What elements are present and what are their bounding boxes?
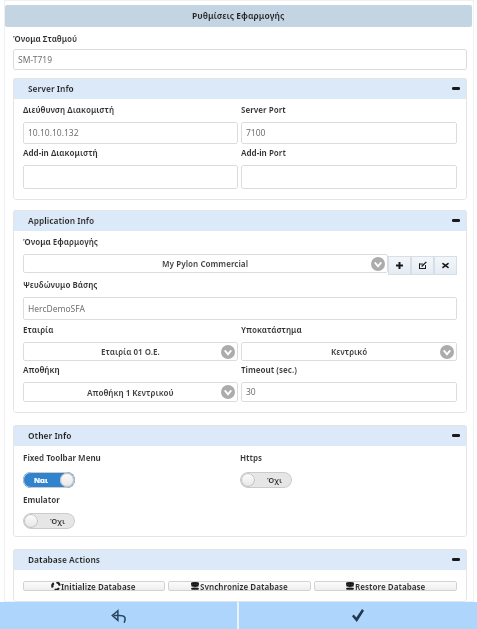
staticText: Https	[240, 452, 263, 463]
button[interactable]: 7100	[241, 122, 457, 144]
staticText: 10.10.10.132	[28, 127, 79, 139]
staticText: Timeout (sec.)	[241, 364, 297, 375]
staticText: Ψευδώνυμο Βάσης	[23, 279, 98, 290]
button[interactable]: Database Actions	[13, 549, 467, 570]
staticText: Fixed Toolbar Menu	[23, 452, 101, 463]
staticText: My Pylon Commercial	[162, 258, 249, 269]
button[interactable]: Όχι	[240, 472, 292, 488]
button[interactable]: Ναι	[23, 472, 75, 488]
button[interactable]: Other Info	[13, 425, 467, 446]
staticText: Server Info	[28, 83, 74, 94]
staticText: Όνομα Εφαρμογής	[23, 236, 98, 247]
staticText: 7100	[246, 127, 266, 139]
button[interactable]: Edit	[411, 256, 434, 275]
staticText: Ναι	[34, 475, 48, 485]
staticText: HercDemoSFA	[28, 303, 85, 315]
button[interactable]: Κεντρικό	[241, 342, 457, 361]
staticText: Αποθήκη	[23, 364, 60, 375]
staticText: Εταιρία 01 Ο.Ε.	[101, 346, 160, 357]
staticText: SM-T719	[18, 54, 53, 66]
staticText: Όνομα Σταθμού	[13, 33, 78, 44]
button[interactable]: Delete	[434, 256, 457, 275]
button[interactable]: Confirm	[239, 602, 477, 629]
button[interactable]: Undo	[0, 602, 237, 629]
button[interactable]: 30	[241, 382, 457, 402]
button[interactable]: 10.10.10.132	[23, 122, 238, 144]
staticText: Add-in Διακομιστή	[23, 147, 98, 158]
staticText: Server Port	[241, 104, 286, 115]
staticText: Application Info	[28, 215, 95, 226]
button[interactable]: Initialize Database	[23, 581, 165, 591]
staticText: Emulator	[23, 494, 60, 505]
staticText: Restore Database	[355, 581, 426, 591]
button[interactable]: Αποθήκη 1 Κεντρικού	[23, 382, 238, 402]
button[interactable]: Εταιρία 01 Ο.Ε.	[23, 342, 238, 361]
staticText: Υποκατάστημα	[241, 324, 302, 335]
staticText: Εταιρία	[23, 324, 54, 335]
button[interactable]: Server Info	[13, 78, 467, 99]
button[interactable]: My Pylon Commercial	[23, 254, 388, 273]
button[interactable]: SM-T719	[13, 49, 467, 70]
button[interactable]: Application Info	[13, 210, 467, 231]
staticText: Database Actions	[28, 554, 100, 565]
staticText: 30	[246, 386, 256, 398]
button[interactable]: Synchronize Database	[168, 581, 311, 591]
staticText: Διεύθυνση Διακομιστή	[23, 104, 115, 115]
button[interactable]	[241, 165, 457, 189]
staticText: Initialize Database	[61, 581, 136, 591]
button[interactable]: Όχι	[23, 513, 75, 529]
staticText: Ρυθμίσεις Εφαρμογής	[192, 10, 285, 22]
staticText: Add-in Port	[241, 147, 286, 158]
staticText: Όχι	[50, 516, 65, 526]
button[interactable]	[23, 165, 238, 189]
staticText: Synchronize Database	[200, 581, 288, 591]
staticText: Όχι	[267, 475, 282, 485]
button[interactable]: Add	[388, 256, 411, 275]
staticText: Αποθήκη 1 Κεντρικού	[87, 387, 174, 398]
staticText: Other Info	[28, 430, 72, 441]
staticText: Κεντρικό	[331, 346, 368, 357]
button[interactable]: HercDemoSFA	[23, 297, 457, 320]
button[interactable]: Restore Database	[314, 581, 457, 591]
